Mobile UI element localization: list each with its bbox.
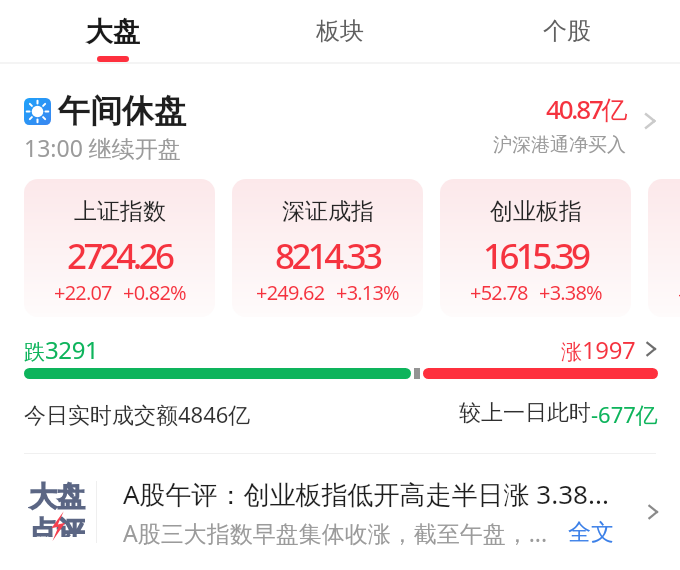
other: Market status xyxy=(24,98,51,125)
button[interactable]: 上证指数 xyxy=(24,179,215,317)
button[interactable]: 大盘 xyxy=(29,469,662,554)
other: More xyxy=(644,503,662,521)
staticText: 全文 xyxy=(568,518,614,547)
staticText: 涨 xyxy=(561,339,582,365)
button[interactable]: Market status xyxy=(24,91,660,167)
staticText: 深证成指 xyxy=(282,197,374,226)
staticText: 8214.33 xyxy=(275,232,380,280)
staticText: 40.87亿 xyxy=(546,91,626,127)
staticText: A股午评：创业板指低开高走半日涨 3.38... xyxy=(123,476,609,512)
staticText: 3291 xyxy=(45,333,99,365)
staticText: +3.38% xyxy=(539,279,602,306)
button[interactable]: 大盘 xyxy=(0,0,226,64)
staticText: 1615.39 xyxy=(483,232,588,280)
button[interactable]: 创业板指 xyxy=(440,179,631,317)
staticText: 午间休盘 xyxy=(58,91,186,131)
staticText: 上证指数 xyxy=(74,197,166,226)
staticText: 点评 xyxy=(29,514,85,537)
staticText: +3.13% xyxy=(336,279,399,306)
other: More xyxy=(642,340,660,358)
staticText: 创业板指 xyxy=(490,197,582,226)
staticText: 跌 xyxy=(24,339,45,365)
button[interactable]: 深证成指 xyxy=(232,179,423,317)
staticText: +0.82% xyxy=(123,279,186,306)
staticText: +91.43 xyxy=(678,281,680,308)
staticText: 1997 xyxy=(582,333,636,365)
staticText: +52.78 xyxy=(470,279,528,306)
staticText: 板块 xyxy=(316,16,364,46)
staticText: +22.07 xyxy=(54,279,112,306)
staticText: 个股 xyxy=(543,16,591,46)
button[interactable]: 沪深300 xyxy=(648,179,680,317)
button[interactable]: 跌 xyxy=(24,333,660,365)
staticText: 大盘 xyxy=(29,479,85,514)
staticText: +249.62 xyxy=(256,279,325,306)
button[interactable]: 板块 xyxy=(226,0,453,64)
staticText: A股三大指数早盘集体收涨，截至午盘，... xyxy=(123,517,548,548)
other: More xyxy=(640,111,660,131)
staticText: 13:00 继续开盘 xyxy=(24,132,181,163)
staticText: 大盘 xyxy=(86,15,140,49)
staticText: 今日实时成交额4846亿 xyxy=(24,399,251,427)
staticText: 沪深港通净买入 xyxy=(493,133,626,157)
staticText: 2724.26 xyxy=(67,232,172,280)
staticText: -677亿 xyxy=(591,399,658,427)
staticText: 较上一日此时 xyxy=(459,399,591,427)
button[interactable]: 个股 xyxy=(453,0,680,64)
